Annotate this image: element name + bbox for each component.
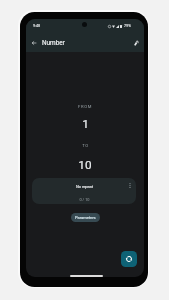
- button[interactable]: Back: [26, 35, 42, 51]
- button[interactable]: No repeat: [32, 178, 136, 204]
- staticText: Parameters: [75, 215, 96, 220]
- staticText: FROM: [78, 104, 92, 109]
- button[interactable]: Parameters: [71, 213, 100, 222]
- staticText: 1: [82, 117, 89, 131]
- staticText: TO: [82, 143, 89, 148]
- staticText: 10: [78, 158, 92, 172]
- staticText: 9:48: [33, 24, 41, 28]
- button[interactable]: Generate: [121, 251, 137, 267]
- button[interactable]: More options: [129, 183, 131, 188]
- staticText: No repeat: [76, 184, 93, 189]
- staticText: 0 / 10: [79, 197, 90, 202]
- staticText: 79%: [124, 24, 131, 28]
- staticText: Number: [42, 39, 65, 47]
- button[interactable]: Randomize: [128, 35, 144, 51]
